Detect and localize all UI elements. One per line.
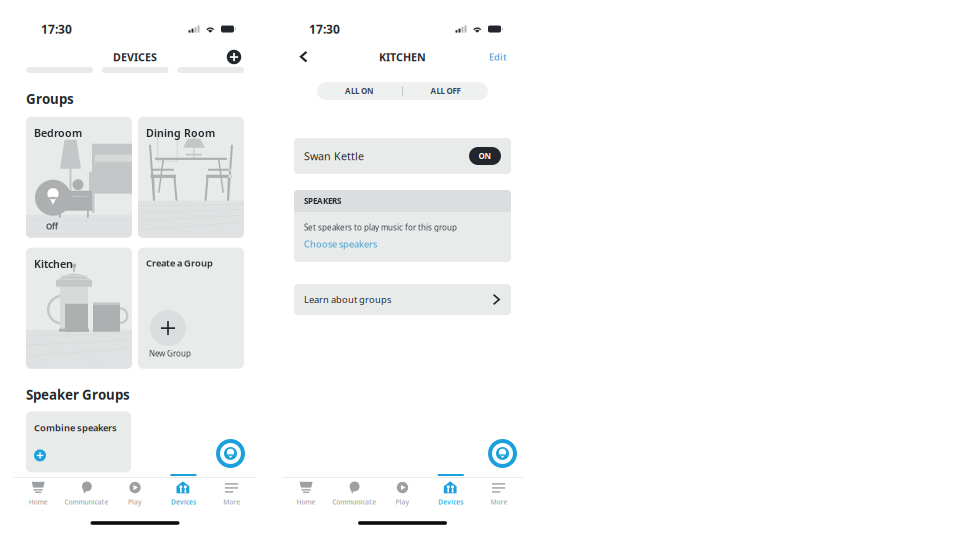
button[interactable]: Dining Room <box>138 117 244 238</box>
button[interactable]: Communicate <box>62 477 111 511</box>
staticText: Create a Group <box>146 257 213 269</box>
staticText: DEVICES <box>113 50 157 64</box>
staticText: SPEAKERS <box>304 196 341 206</box>
staticText: Communicate <box>65 497 109 506</box>
button[interactable]: Add device <box>224 47 244 67</box>
staticText: More <box>223 497 240 506</box>
staticText: Swan Kettle <box>304 149 364 163</box>
button[interactable]: Alexa <box>216 439 245 468</box>
staticText: Learn about groups <box>304 293 391 306</box>
staticText: New Group <box>149 348 191 359</box>
staticText: 17:30 <box>41 21 72 37</box>
staticText: Devices <box>171 497 196 506</box>
button[interactable]: Swan Kettle <box>294 138 511 174</box>
staticText: More <box>490 497 507 506</box>
staticText: Speaker Groups <box>26 386 130 403</box>
staticText: KITCHEN <box>379 50 426 64</box>
staticText: Communicate <box>332 497 376 506</box>
button[interactable]: Back <box>294 46 313 67</box>
staticText: ON <box>478 151 491 161</box>
button[interactable]: Home <box>14 477 62 511</box>
button[interactable]: Communicate <box>330 477 378 511</box>
staticText: Devices <box>438 497 463 506</box>
button[interactable]: Combine speakers <box>26 411 131 472</box>
button[interactable]: DEVICES <box>113 50 157 64</box>
staticText: Set speakers to play music for this grou… <box>304 222 457 233</box>
button[interactable]: Create a Group <box>138 248 244 369</box>
staticText: ALL OFF <box>430 86 460 96</box>
staticText: Groups <box>26 90 74 108</box>
button[interactable]: Home <box>282 477 330 511</box>
button[interactable]: Devices <box>427 477 475 511</box>
button[interactable]: Edit <box>485 47 511 67</box>
staticText: Home <box>29 497 48 506</box>
staticText: Dining Room <box>146 126 215 140</box>
button[interactable]: Choose speakers <box>294 238 377 250</box>
staticText: Home <box>297 497 316 506</box>
button[interactable]: More <box>208 477 256 511</box>
staticText: Play <box>395 497 409 506</box>
staticText: ALL ON <box>345 86 374 96</box>
button[interactable]: Devices <box>159 477 208 511</box>
button[interactable]: Alexa <box>488 439 517 468</box>
button[interactable]: Learn about groups <box>294 284 511 315</box>
staticText: Combine speakers <box>34 421 117 434</box>
staticText: Off <box>46 221 58 232</box>
button[interactable]: Play <box>378 477 427 511</box>
staticText: 17:30 <box>309 21 340 37</box>
staticText: Play <box>128 497 142 506</box>
staticText: Choose speakers <box>304 238 377 250</box>
staticText: Bedroom <box>34 126 82 140</box>
staticText: Kitchen <box>34 257 73 271</box>
button[interactable]: ALL OFF <box>403 82 488 100</box>
staticText: Edit <box>489 51 507 63</box>
button[interactable]: Kitchen <box>26 248 132 369</box>
button[interactable]: Bedroom <box>26 117 132 238</box>
button[interactable]: Play <box>111 477 159 511</box>
button[interactable]: ALL ON <box>317 82 402 100</box>
button[interactable]: More <box>475 477 523 511</box>
